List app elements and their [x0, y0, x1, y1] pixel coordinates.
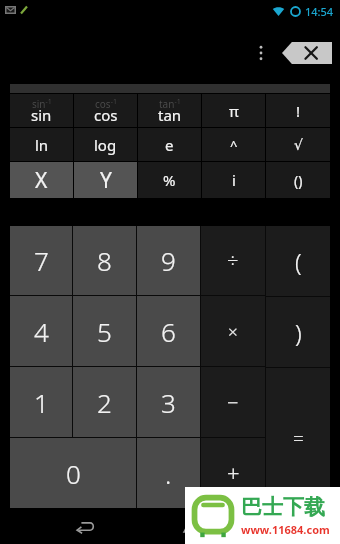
button[interactable]: (): [266, 162, 330, 198]
staticText: 3: [161, 385, 176, 420]
button[interactable]: i: [202, 162, 265, 198]
button[interactable]: X: [10, 162, 73, 198]
button[interactable]: 6: [137, 296, 200, 366]
button[interactable]: tan-1: [138, 94, 201, 127]
staticText: √: [294, 137, 303, 153]
button[interactable]: sin-1: [10, 94, 73, 127]
staticText: ×: [228, 320, 238, 343]
staticText: Y: [100, 166, 112, 195]
button[interactable]: 0: [10, 438, 136, 508]
staticText: tan: [158, 105, 182, 125]
button[interactable]: 4: [10, 296, 72, 366]
button[interactable]: +: [201, 438, 265, 508]
button[interactable]: %: [138, 162, 201, 198]
staticText: 7: [34, 243, 49, 278]
staticText: −: [227, 389, 239, 416]
staticText: π: [229, 101, 239, 121]
staticText: e: [165, 135, 174, 155]
button[interactable]: π: [202, 94, 265, 127]
button[interactable]: =: [266, 368, 330, 508]
button[interactable]: e: [138, 128, 201, 161]
staticText: ÷: [227, 247, 239, 274]
staticText: 6: [161, 314, 176, 349]
staticText: ): [295, 316, 302, 349]
button[interactable]: 5: [73, 296, 136, 366]
button[interactable]: ×: [201, 296, 265, 366]
staticText: tan-1: [159, 97, 181, 111]
staticText: 0: [66, 456, 81, 491]
staticText: !: [296, 101, 301, 121]
staticText: 8: [97, 243, 112, 278]
button[interactable]: !: [266, 94, 330, 127]
button[interactable]: More options: [248, 36, 274, 70]
button[interactable]: 9: [137, 226, 200, 295]
button[interactable]: cos-1: [74, 94, 137, 127]
button[interactable]: (: [266, 226, 330, 296]
staticText: www.11684.com: [241, 522, 330, 537]
staticText: cos: [94, 105, 118, 125]
staticText: =: [293, 425, 304, 451]
staticText: (: [295, 245, 302, 278]
staticText: %: [163, 170, 176, 190]
button[interactable]: ): [266, 297, 330, 367]
staticText: 2: [97, 385, 112, 420]
staticText: sin-1: [32, 97, 52, 111]
staticText: ^: [230, 136, 238, 154]
staticText: .: [165, 456, 172, 491]
staticText: 1: [34, 385, 49, 420]
staticText: +: [227, 458, 240, 488]
staticText: cos-1: [95, 97, 117, 111]
button[interactable]: Back: [62, 508, 108, 544]
staticText: ln: [35, 135, 49, 155]
button[interactable]: ln: [10, 128, 73, 161]
staticText: 14:54: [305, 4, 334, 19]
button[interactable]: √: [266, 128, 330, 161]
button[interactable]: −: [201, 367, 265, 437]
button[interactable]: .: [137, 438, 200, 508]
staticText: 4: [34, 314, 49, 349]
button[interactable]: Home: [170, 508, 216, 544]
staticText: 5: [97, 314, 112, 349]
button[interactable]: 8: [73, 226, 136, 295]
staticText: (): [294, 171, 303, 190]
staticText: i: [232, 170, 236, 190]
button[interactable]: ^: [202, 128, 265, 161]
button[interactable]: Delete: [282, 42, 332, 64]
staticText: log: [94, 135, 117, 155]
button[interactable]: log: [74, 128, 137, 161]
button[interactable]: 3: [137, 367, 200, 437]
staticText: 9: [161, 243, 176, 278]
button[interactable]: ÷: [201, 226, 265, 295]
button[interactable]: 7: [10, 226, 72, 295]
staticText: sin: [31, 105, 52, 125]
staticText: X: [35, 166, 48, 195]
button[interactable]: 1: [10, 367, 72, 437]
button[interactable]: 2: [73, 367, 136, 437]
staticText: 巴士下载: [241, 494, 325, 520]
button[interactable]: Y: [74, 162, 137, 198]
